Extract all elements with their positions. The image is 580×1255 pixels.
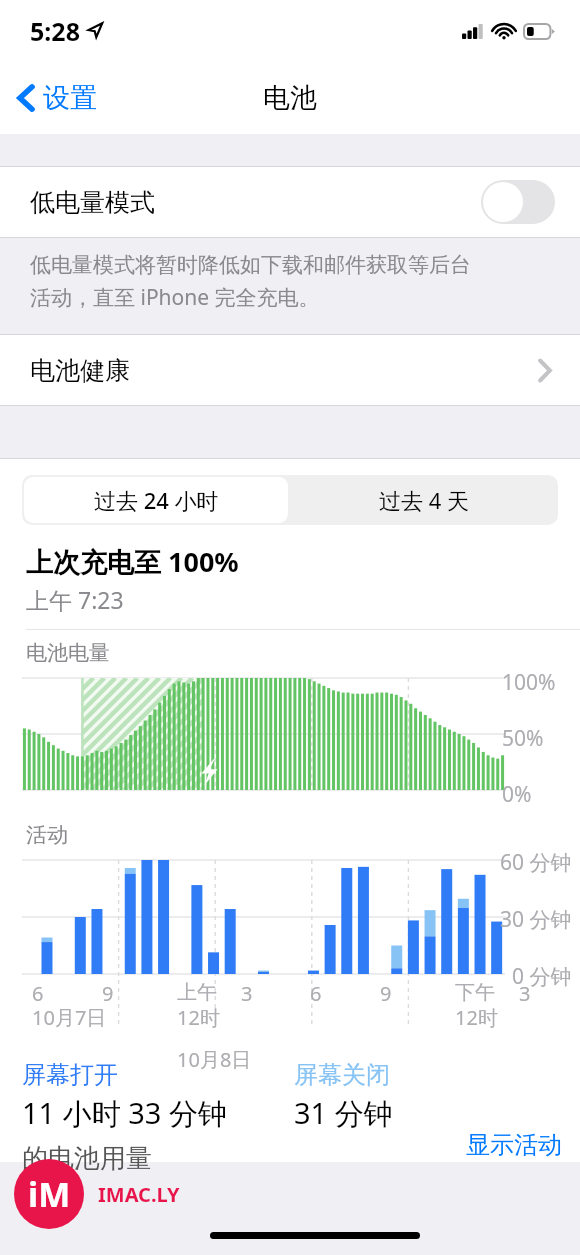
button[interactable]: 过去 24 小时 bbox=[24, 477, 288, 523]
staticText: IMAC.LY bbox=[98, 1181, 180, 1208]
button[interactable]: 低电量模式 bbox=[0, 166, 580, 238]
staticText: 11 小时 33 分钟 bbox=[22, 1093, 227, 1133]
staticText: 电池电量 bbox=[26, 640, 110, 666]
staticText: 9 bbox=[102, 980, 114, 1007]
button[interactable]: 设置 bbox=[0, 73, 111, 123]
staticText: 电池健康 bbox=[30, 355, 130, 386]
staticText: 屏幕关闭 bbox=[294, 1060, 390, 1090]
button[interactable]: 过去 4 天 bbox=[290, 475, 558, 525]
staticText: 9 bbox=[380, 980, 392, 1007]
staticText: 0 分钟 bbox=[512, 962, 572, 991]
staticText: 6 bbox=[310, 980, 322, 1007]
staticText: 50% bbox=[502, 724, 544, 753]
staticText: 6 bbox=[32, 980, 44, 1007]
button[interactable]: 低电量模式开关 bbox=[481, 180, 555, 224]
staticText: iM bbox=[28, 1171, 71, 1217]
staticText: 低电量模式将暂时降低如下载和邮件获取等后台 bbox=[30, 252, 471, 278]
staticText: 低电量模式 bbox=[30, 187, 155, 218]
staticText: 10月7日 bbox=[32, 1004, 107, 1031]
staticText: 3 bbox=[519, 980, 531, 1007]
staticText: 上午 bbox=[177, 980, 217, 1005]
staticText: 12时 bbox=[455, 1004, 498, 1031]
staticText: 10月8日 bbox=[177, 1046, 252, 1073]
staticText: 30 分钟 bbox=[500, 905, 572, 934]
button[interactable]: 显示活动 bbox=[466, 1130, 562, 1160]
staticText: 3 bbox=[241, 980, 253, 1007]
staticText: 5:28 bbox=[30, 14, 80, 48]
staticText: 0% bbox=[502, 780, 532, 809]
staticText: 31 分钟 bbox=[294, 1093, 393, 1133]
staticText: 电池 bbox=[263, 81, 317, 115]
button[interactable]: 电池健康 bbox=[0, 334, 580, 406]
staticText: 活动，直至 iPhone 完全充电。 bbox=[30, 283, 320, 312]
staticText: 下午 bbox=[455, 980, 495, 1005]
staticText: 过去 4 天 bbox=[379, 485, 470, 515]
staticText: 100% bbox=[502, 668, 556, 697]
staticText: 12时 bbox=[177, 1004, 220, 1031]
staticText: 活动 bbox=[26, 822, 68, 848]
staticText: 显示活动 bbox=[466, 1130, 562, 1160]
staticText: 60 分钟 bbox=[500, 848, 572, 877]
staticText: 上次充电至 100% bbox=[26, 543, 239, 580]
staticText: 过去 24 小时 bbox=[94, 485, 219, 515]
staticText: 的电池用量 bbox=[22, 1142, 152, 1175]
staticText: 屏幕打开 bbox=[22, 1060, 118, 1090]
staticText: 设置 bbox=[43, 81, 97, 115]
staticText: 上午 7:23 bbox=[26, 584, 124, 615]
